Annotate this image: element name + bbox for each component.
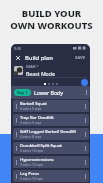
staticText: 3 sets x 12 reps <box>20 163 44 167</box>
button[interactable]: NAME * <box>14 64 87 76</box>
staticText: 4 sets x 5 reps <box>20 107 42 111</box>
staticText: 3 sets x 10 reps <box>20 149 44 153</box>
staticText: BUILD YOUR OWN WORKOUTS <box>0 7 103 31</box>
staticText: 3 sets x 10 reps <box>20 177 44 181</box>
staticText: 9:30 <box>14 46 22 51</box>
button[interactable]: Close <box>14 54 22 62</box>
staticText: Stiff Legged Barbell Deadlift <box>20 129 77 135</box>
button[interactable]: Trap Bar Deadlift <box>13 114 89 126</box>
staticText: SAVE <box>75 55 86 61</box>
button[interactable]: Stiff Legged Barbell Deadlift <box>13 128 89 140</box>
staticText: 4 sets x 8 reps <box>20 135 42 139</box>
button[interactable]: SAVE <box>74 53 87 63</box>
staticText: Trap Bar Deadlift <box>20 115 54 121</box>
staticText: 3 sets x 5 reps <box>20 121 42 125</box>
staticText: Leg Press <box>20 171 40 177</box>
staticText: Build plan <box>25 54 53 62</box>
button[interactable]: Barbell Squat <box>13 100 89 112</box>
staticText: Lower Body <box>34 89 64 96</box>
button[interactable]: Day 1 <box>11 86 90 99</box>
button[interactable]: Dumbbell Split Squat <box>13 142 89 154</box>
staticText: Barbell Squat <box>20 101 47 107</box>
staticText: Beast Mode <box>26 70 55 76</box>
staticText: NAME * <box>26 64 39 69</box>
staticText: Hyperextensions <box>20 157 54 163</box>
staticText: Dumbbell Split Squat <box>20 143 62 149</box>
button[interactable]: Leg Press <box>13 170 89 182</box>
button[interactable]: Add day <box>81 79 88 86</box>
button[interactable]: Hyperextensions <box>13 156 89 168</box>
staticText: Day 1 <box>17 90 28 95</box>
